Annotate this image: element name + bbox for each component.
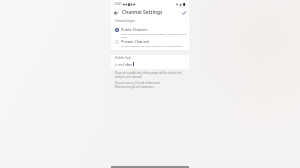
staticText: Private Channel xyxy=(121,39,150,44)
staticText: Public Channel xyxy=(121,27,148,32)
button[interactable]: Public Channel xyxy=(111,27,189,38)
staticText: If you set a public link, other people w… xyxy=(115,71,186,79)
staticText: chn xyxy=(125,62,132,67)
button[interactable]: t.me/ xyxy=(111,62,189,67)
staticText: 10:41 xyxy=(114,2,122,6)
staticText: Channel Settings xyxy=(122,9,163,16)
staticText: t.me/ xyxy=(115,62,125,67)
button[interactable]: Done xyxy=(180,9,188,17)
button[interactable]: Back xyxy=(112,9,120,17)
staticText: Private channels can only be joined via … xyxy=(121,44,182,47)
staticText: Public channels can be found in search, … xyxy=(121,32,188,38)
staticText: Public link xyxy=(115,56,131,60)
staticText: Channel type xyxy=(115,19,136,23)
staticText: You can use a-z, 0-9 and underscores. Mi… xyxy=(115,81,161,89)
button[interactable]: Private Channel xyxy=(111,39,189,47)
